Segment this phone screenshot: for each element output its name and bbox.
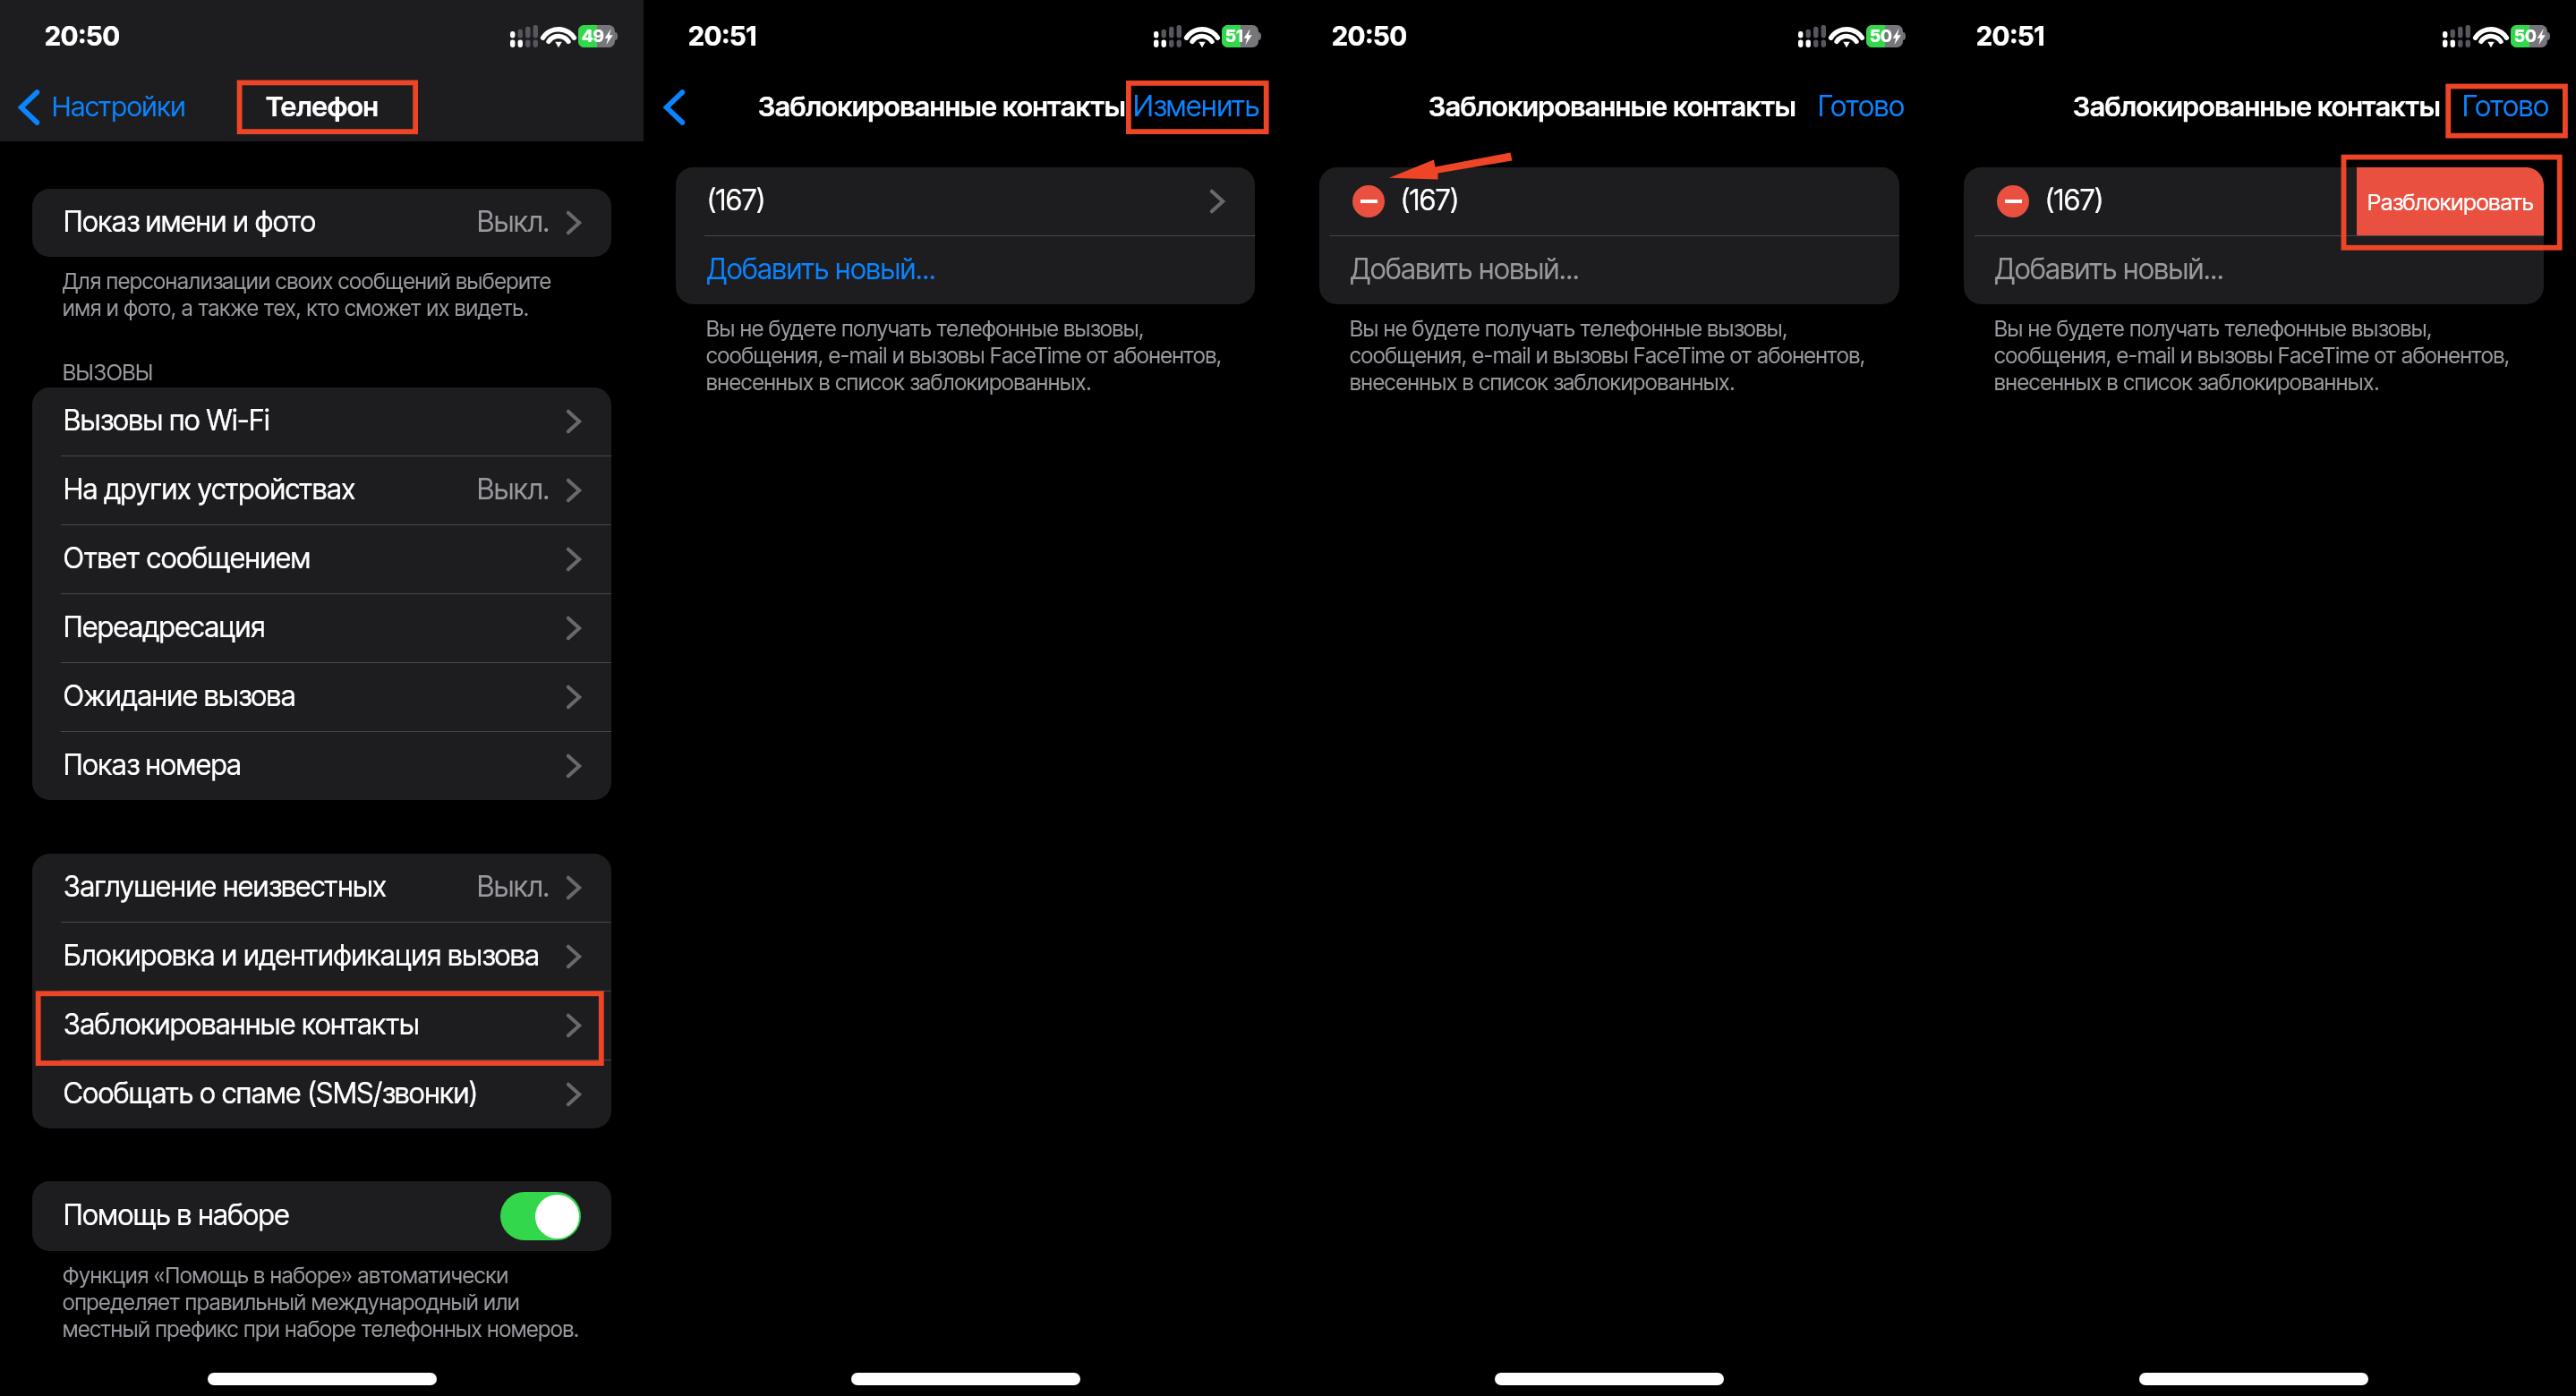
staticText: 50 <box>1870 25 1892 47</box>
staticText: Телефон <box>266 89 379 123</box>
button[interactable]: Разблокировать <box>2357 167 2544 235</box>
staticText: Добавить новый... <box>1995 252 2224 286</box>
staticText: 20:51 <box>1976 20 2045 52</box>
staticText: 20:51 <box>688 20 757 52</box>
staticText: Переадресация <box>64 610 266 644</box>
staticText: 49 <box>582 25 604 47</box>
button[interactable]: Показ номера <box>32 732 611 800</box>
staticText: Добавить новый... <box>1351 252 1580 286</box>
staticText: 20:50 <box>1332 20 1407 52</box>
button[interactable]: Помощь в наборе, включено <box>500 1192 581 1240</box>
staticText: 51 <box>1225 25 1243 47</box>
staticText: Заблокированные контакты <box>64 1008 420 1042</box>
button[interactable]: Сообщать о спаме (SMS/звонки) <box>32 1060 611 1128</box>
staticText: (167) <box>2045 183 2103 217</box>
button[interactable]: Удалить <box>1352 185 1385 217</box>
staticText: Вы не будете получать телефонные вызовы,… <box>1350 315 1866 396</box>
button[interactable]: Блокировка и идентификация вызова <box>32 923 611 991</box>
staticText: Блокировка и идентификация вызова <box>64 939 540 973</box>
button[interactable]: Заглушение неизвестных <box>32 854 611 922</box>
staticText: Ответ сообщением <box>64 541 311 575</box>
staticText: Настройки <box>52 89 186 123</box>
staticText: Функция «Помощь в наборе» автоматически … <box>63 1262 579 1342</box>
staticText: Выкл. <box>477 870 550 904</box>
button[interactable]: Удалить <box>1964 167 2544 235</box>
button[interactable]: Ожидание вызова <box>32 663 611 731</box>
staticText: Для персонализации своих сообщений выбер… <box>63 268 551 321</box>
button[interactable]: Назад в Настройки <box>13 90 196 123</box>
staticText: Заблокированные контакты <box>2073 89 2441 123</box>
staticText: Показ имени и фото <box>64 205 316 239</box>
button[interactable]: Удалить <box>1319 167 1899 235</box>
button[interactable]: На других устройствах <box>32 456 611 524</box>
staticText: На других устройствах <box>64 472 355 506</box>
button[interactable]: Готово <box>2462 89 2576 124</box>
staticText: Выкл. <box>477 205 550 239</box>
button[interactable]: Удалить <box>1997 185 2029 217</box>
staticText: Ожидание вызова <box>64 679 296 713</box>
staticText: Заблокированные контакты <box>758 89 1126 123</box>
button[interactable]: Добавить новый... <box>676 236 1255 304</box>
staticText: Показ номера <box>64 748 242 782</box>
staticText: Заглушение неизвестных <box>64 870 387 904</box>
staticText: 50 <box>2514 25 2537 47</box>
staticText: Разблокировать <box>2367 188 2534 216</box>
button[interactable]: Переадресация <box>32 594 611 662</box>
button[interactable]: Помощь в наборе <box>32 1181 611 1251</box>
button[interactable]: Добавить новый... <box>1964 236 2544 304</box>
staticText: Выкл. <box>477 472 550 506</box>
staticText: ВЫЗОВЫ <box>63 359 153 386</box>
staticText: (167) <box>707 183 765 217</box>
staticText: Заблокированные контакты <box>1429 89 1796 123</box>
staticText: Вызовы по Wi-Fi <box>64 404 270 438</box>
button[interactable]: Готово <box>1818 89 1932 124</box>
button[interactable]: Показ имени и фото <box>32 189 611 257</box>
button[interactable]: Изменить <box>1133 89 1287 124</box>
button[interactable]: Заблокированные контакты <box>32 992 611 1060</box>
staticText: Вы не будете получать телефонные вызовы,… <box>1994 315 2511 396</box>
staticText: Сообщать о спаме (SMS/звонки) <box>64 1077 478 1111</box>
button[interactable]: Назад <box>655 81 694 133</box>
staticText: Добавить новый... <box>707 252 936 286</box>
staticText: (167) <box>1401 183 1459 217</box>
button[interactable]: (167) <box>676 167 1255 235</box>
staticText: Вы не будете получать телефонные вызовы,… <box>706 315 1223 396</box>
staticText: 20:50 <box>45 20 120 52</box>
staticText: Помощь в наборе <box>64 1198 290 1232</box>
button[interactable]: Добавить новый... <box>1319 236 1899 304</box>
button[interactable]: Вызовы по Wi-Fi <box>32 387 611 455</box>
button[interactable]: Ответ сообщением <box>32 525 611 593</box>
